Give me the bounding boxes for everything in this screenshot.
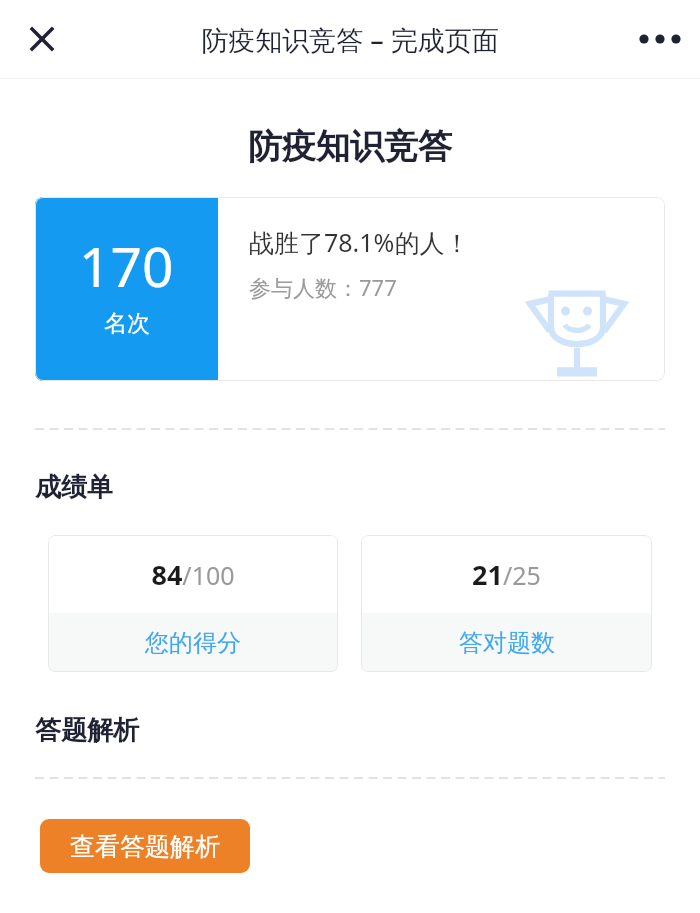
- staticText: 21/25: [472, 556, 541, 593]
- button[interactable]: 84/100: [48, 535, 338, 672]
- staticText: 84/100: [151, 556, 235, 593]
- button[interactable]: 查看答题解析: [40, 819, 250, 873]
- button[interactable]: Close: [14, 11, 70, 67]
- button[interactable]: 170: [35, 197, 665, 381]
- button[interactable]: More options: [632, 11, 688, 67]
- staticText: 战胜了78.1%的人！: [249, 225, 470, 259]
- staticText: 答题解析: [35, 714, 139, 747]
- staticText: 参与人数：777: [249, 272, 397, 302]
- staticText: 名次: [104, 309, 150, 338]
- button[interactable]: 21/25: [361, 535, 652, 672]
- staticText: 成绩单: [35, 471, 113, 504]
- staticText: 您的得分: [145, 628, 241, 658]
- staticText: 查看答题解析: [70, 831, 220, 862]
- staticText: 防疫知识竞答: [0, 125, 700, 168]
- staticText: 答对题数: [459, 628, 555, 658]
- staticText: 170: [79, 228, 174, 303]
- staticText: 防疫知识竞答 – 完成页面: [201, 21, 499, 58]
